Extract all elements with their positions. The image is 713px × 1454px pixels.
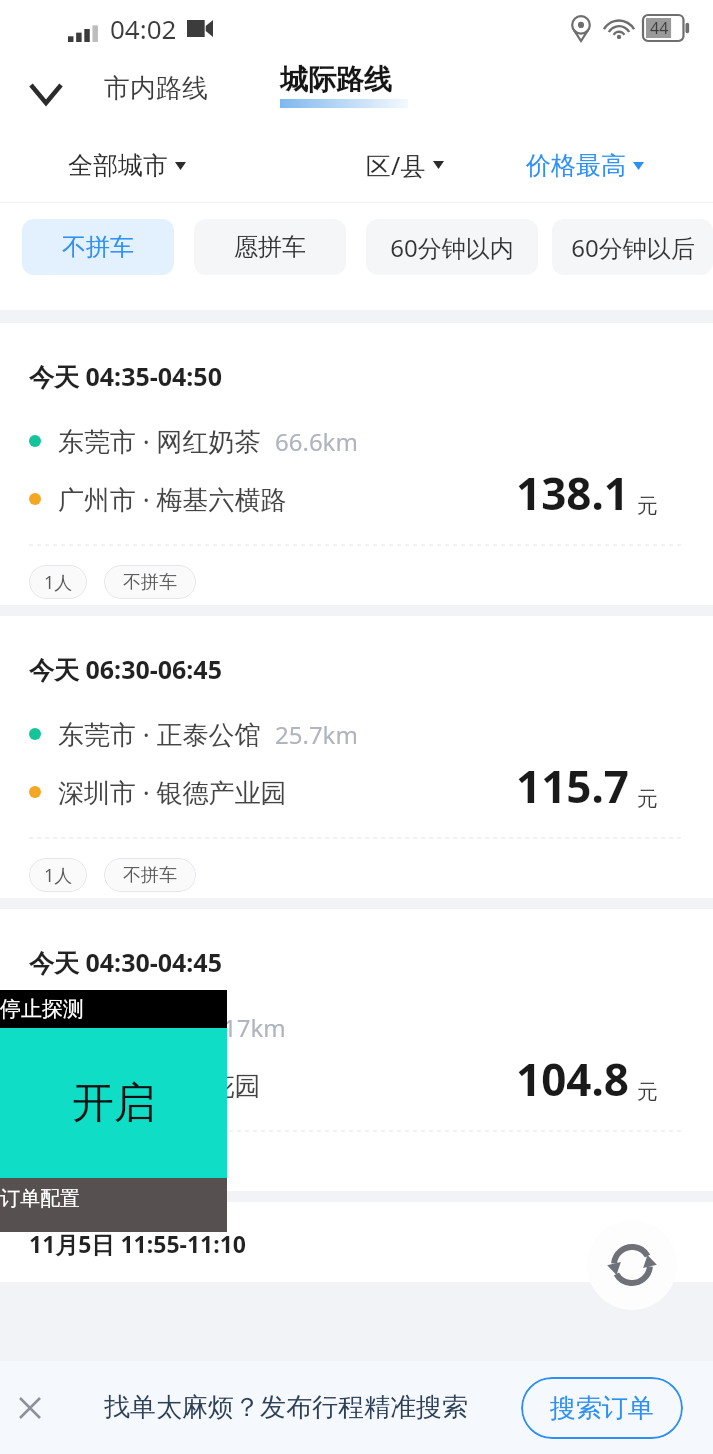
staticText: 17km [223, 1011, 286, 1044]
staticText: 停止探测 [0, 996, 84, 1022]
staticText: 东莞市 · 网红奶茶 [58, 423, 261, 459]
staticText: 东莞市 · 正泰公馆 [58, 716, 261, 752]
staticText: 138.1 [516, 463, 630, 523]
staticText: 今天 04:30-04:45 [29, 945, 222, 979]
button[interactable]: 不拼车 [22, 219, 174, 275]
staticText: 25.7km [275, 718, 358, 751]
staticText: 全部城市 [68, 150, 168, 181]
button[interactable]: 全部城市 [62, 140, 192, 191]
staticText: 不拼车 [123, 864, 177, 887]
button[interactable]: 市内路线 [96, 64, 216, 113]
staticText: 60分钟以内 [390, 231, 514, 264]
button[interactable]: 区/县 [360, 138, 450, 192]
button[interactable]: Expand [24, 72, 68, 116]
staticText: 1人 [44, 570, 73, 595]
button[interactable]: 今天 04:35-04:50 [0, 323, 713, 605]
staticText: 60分钟以后 [571, 231, 695, 264]
staticText: 不拼车 [123, 1157, 177, 1180]
staticText: 不拼车 [62, 232, 134, 262]
staticText: 城际路线 [280, 62, 392, 97]
staticText: 04:02 [110, 11, 177, 46]
button[interactable]: 今天 04:30-04:45 [0, 909, 713, 1191]
staticText: 开启 [72, 1077, 156, 1130]
button[interactable]: Close [8, 1386, 52, 1430]
staticText: 元 [637, 1079, 658, 1105]
staticText: 东莞市第六… [58, 1009, 209, 1045]
staticText: 44 [650, 17, 669, 39]
staticText: 找单太麻烦？发布行程精准搜索 [104, 1391, 468, 1424]
button[interactable]: 愿拼车 [194, 219, 346, 275]
staticText: 元 [637, 493, 658, 519]
staticText: 市内路线 [104, 72, 208, 105]
button[interactable]: 11月5日 11:55-11:10 [0, 1202, 713, 1282]
staticText: 不拼车 [123, 571, 177, 594]
staticText: 今天 04:35-04:50 [29, 359, 222, 393]
button[interactable]: 城际路线 [272, 62, 408, 108]
button[interactable]: 60分钟以内 [366, 219, 538, 275]
staticText: 11月5日 11:55-11:10 [29, 1228, 246, 1259]
staticText: 1人 [44, 1156, 73, 1181]
staticText: 订单配置 [0, 1186, 80, 1211]
staticText: 元 [637, 786, 658, 812]
staticText: 今天 06:30-06:45 [29, 652, 222, 686]
staticText: 搜索订单 [550, 1392, 654, 1425]
button[interactable]: 今天 06:30-06:45 [0, 616, 713, 898]
staticText: 1人 [44, 863, 73, 888]
staticText: 价格最高 [526, 150, 626, 181]
button[interactable]: Refresh [587, 1220, 677, 1310]
button[interactable]: 开启 [0, 1028, 227, 1178]
staticText: 区/县 [366, 148, 426, 182]
staticText: 愿拼车 [234, 232, 306, 262]
button[interactable]: 60分钟以后 [552, 219, 713, 275]
button[interactable]: 搜索订单 [521, 1377, 683, 1439]
button[interactable]: 价格最高 [520, 140, 650, 191]
staticText: 深圳市 · 银德产业园 [58, 774, 287, 810]
staticText: 104.8 [516, 1049, 630, 1109]
staticText: 广州市 · 梅基六横路 [58, 481, 287, 517]
staticText: 115.7 [516, 756, 630, 816]
staticText: 66.6km [275, 425, 358, 458]
staticText: 东莞市 · 凤山花园 [58, 1067, 261, 1103]
